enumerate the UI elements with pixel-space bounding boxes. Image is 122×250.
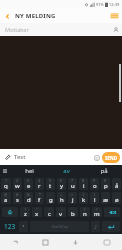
staticText: SEND bbox=[105, 155, 117, 161]
button[interactable]: Emoji bbox=[91, 152, 102, 163]
button[interactable]: Shift bbox=[2, 207, 18, 217]
staticText: 3 bbox=[27, 178, 30, 183]
staticText: 8 bbox=[82, 178, 85, 183]
staticText: på bbox=[100, 167, 108, 175]
staticText: a bbox=[4, 196, 8, 204]
button[interactable]: - bbox=[46, 192, 55, 204]
staticText: g bbox=[49, 196, 53, 204]
staticText: y bbox=[60, 182, 64, 190]
button[interactable]: Enter bbox=[102, 221, 120, 232]
staticText: Test bbox=[14, 153, 26, 161]
button[interactable]: + bbox=[57, 192, 66, 204]
button[interactable]: ) bbox=[90, 192, 99, 204]
button[interactable]: : bbox=[56, 207, 66, 217]
staticText: r bbox=[38, 182, 41, 190]
button[interactable]: Symbols bbox=[91, 221, 100, 232]
button[interactable]: Back bbox=[0, 9, 14, 23]
button[interactable]: * bbox=[35, 192, 44, 204]
staticText: z bbox=[24, 210, 27, 217]
button[interactable]: = bbox=[68, 192, 77, 204]
staticText: f bbox=[38, 196, 41, 204]
staticText: j bbox=[72, 196, 74, 204]
staticText: c bbox=[48, 210, 51, 217]
staticText: å bbox=[115, 182, 119, 190]
staticText: u bbox=[71, 182, 75, 190]
button[interactable]: Menu bbox=[106, 9, 122, 23]
staticText: 91% bbox=[96, 2, 104, 7]
button[interactable]: 5 bbox=[46, 178, 55, 190]
staticText: 2 bbox=[16, 178, 19, 183]
button[interactable]: & bbox=[24, 192, 33, 204]
button[interactable]: ' bbox=[44, 207, 54, 217]
staticText: ( bbox=[83, 192, 85, 197]
button[interactable]: Attach bbox=[0, 150, 14, 164]
button[interactable]: ø bbox=[112, 192, 121, 204]
button[interactable]: ! bbox=[20, 207, 30, 217]
button[interactable]: 3 bbox=[24, 178, 33, 190]
button[interactable]: 8 bbox=[79, 178, 88, 190]
staticText: i bbox=[83, 182, 85, 190]
button[interactable]: 7 bbox=[68, 178, 77, 190]
button[interactable]: 0 bbox=[101, 178, 110, 190]
staticText: hei bbox=[25, 167, 34, 175]
staticText: p bbox=[104, 182, 108, 190]
button[interactable]: Add contact bbox=[109, 23, 122, 36]
button[interactable]: # bbox=[13, 192, 22, 204]
button[interactable]: ( bbox=[79, 192, 88, 204]
button[interactable]: Switch keyboard bbox=[91, 234, 122, 250]
staticText: Mottaker bbox=[5, 26, 29, 33]
button[interactable]: 2 bbox=[13, 178, 22, 190]
staticText: # bbox=[16, 192, 19, 197]
button[interactable]: på bbox=[85, 165, 122, 177]
button[interactable]: 123 bbox=[2, 221, 17, 232]
staticText: q bbox=[4, 182, 8, 190]
staticText: ø bbox=[115, 196, 119, 204]
staticText: ; bbox=[73, 207, 74, 212]
staticText: v bbox=[59, 210, 63, 217]
button[interactable]: 4 bbox=[35, 178, 44, 190]
button[interactable]: 6 bbox=[57, 178, 66, 190]
button[interactable]: å bbox=[112, 178, 121, 190]
staticText: m bbox=[94, 210, 100, 217]
button[interactable]: Voice input bbox=[19, 221, 28, 232]
staticText: " bbox=[36, 207, 38, 212]
button[interactable]: ; bbox=[68, 207, 78, 217]
staticText: 6 bbox=[60, 178, 63, 183]
staticText: h bbox=[60, 196, 64, 204]
button[interactable]: Mottaker bbox=[0, 23, 122, 36]
staticText: x bbox=[35, 210, 39, 217]
button[interactable]: 1 bbox=[1, 178, 11, 190]
staticText: ? bbox=[96, 207, 98, 212]
staticText: n bbox=[83, 210, 87, 217]
button[interactable]: @ bbox=[1, 192, 11, 204]
button[interactable]: SwiftKey bbox=[30, 221, 89, 232]
staticText: s bbox=[16, 196, 19, 204]
button[interactable]: / bbox=[80, 207, 90, 217]
button[interactable]: æ bbox=[101, 192, 110, 204]
staticText: t bbox=[49, 182, 52, 190]
button[interactable]: SEND bbox=[102, 152, 120, 163]
staticText: ♪ bbox=[94, 224, 98, 230]
staticText: ) bbox=[94, 192, 96, 197]
staticText: 9 bbox=[93, 178, 96, 183]
button[interactable]: Keyboard menu bbox=[0, 166, 10, 176]
button[interactable]: 9 bbox=[90, 178, 99, 190]
staticText: w bbox=[15, 182, 20, 190]
staticText: æ bbox=[103, 196, 109, 204]
button[interactable]: hei bbox=[10, 165, 48, 177]
staticText: * bbox=[39, 192, 41, 197]
button[interactable]: " bbox=[32, 207, 42, 217]
button[interactable]: Hide keyboard bbox=[60, 234, 91, 250]
staticText: 4 bbox=[38, 178, 41, 183]
staticText: 1 bbox=[5, 178, 8, 183]
staticText: d bbox=[27, 196, 31, 204]
staticText: ' bbox=[49, 207, 50, 212]
staticText: / bbox=[84, 207, 86, 212]
button[interactable]: Home bbox=[30, 234, 60, 250]
staticText: o bbox=[93, 182, 97, 190]
button[interactable]: Backspace bbox=[104, 207, 120, 217]
button[interactable]: Recents bbox=[0, 234, 30, 250]
staticText: 123 bbox=[4, 222, 16, 231]
button[interactable]: ? bbox=[92, 207, 102, 217]
button[interactable]: av bbox=[48, 165, 85, 177]
